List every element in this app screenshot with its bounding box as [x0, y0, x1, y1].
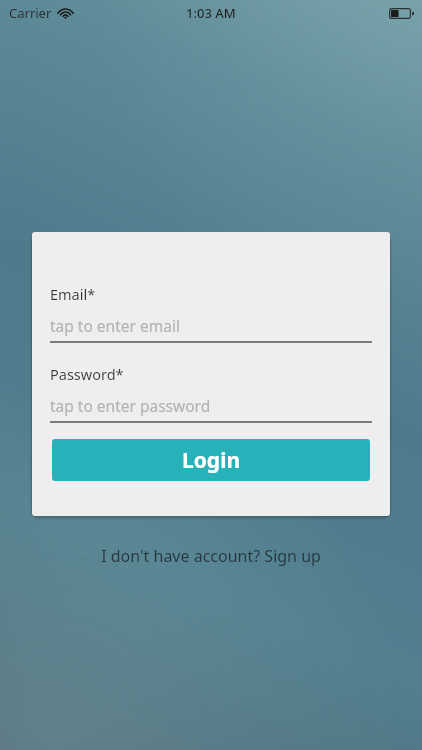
staticText: Email* [50, 284, 96, 304]
staticText: Login [182, 446, 241, 475]
staticText: 1:03 AM [186, 4, 236, 22]
staticText: tap to enter email [50, 315, 180, 336]
staticText: tap to enter password [50, 395, 211, 416]
staticText: Password* [50, 364, 124, 384]
other: Battery [389, 8, 414, 19]
staticText: I don't have account? Sign up [101, 545, 321, 567]
staticText: Carrier [9, 4, 52, 22]
button[interactable]: Login [52, 439, 370, 481]
button[interactable]: I don't have account? Sign up [89, 540, 333, 572]
